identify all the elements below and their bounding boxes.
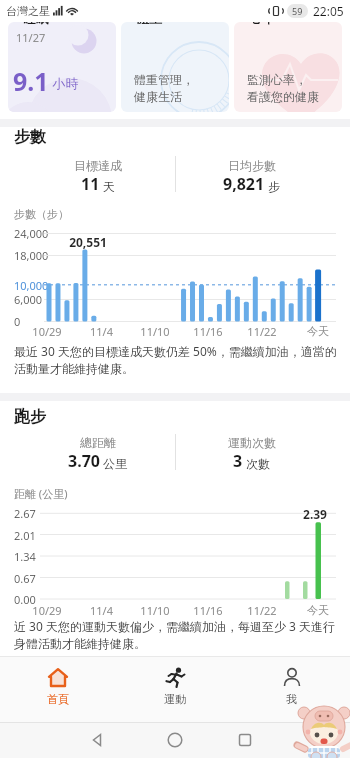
button[interactable]: 心率 (234, 22, 342, 112)
staticText: 我 (286, 692, 297, 706)
staticText: 步 (265, 178, 281, 194)
staticText: 日均步數 (228, 158, 276, 173)
staticText: 11/10 (140, 324, 170, 339)
staticText: 身體活動才能維持健康。 (14, 636, 146, 651)
staticText: 步數（步） (14, 207, 69, 221)
staticText: 首頁 (47, 692, 69, 706)
button[interactable]: 睡眠 (8, 22, 116, 112)
staticText: 運動次數 (228, 435, 276, 450)
staticText: 11 (81, 173, 100, 195)
staticText: 3.70 (68, 450, 100, 472)
staticText: 活動量才能維持健康。 (14, 361, 134, 376)
staticText: 0 (14, 314, 21, 329)
staticText: 總距離 (80, 435, 116, 450)
staticText: 今天 (307, 324, 329, 338)
button[interactable] (153, 722, 197, 758)
staticText: 監測心率， (247, 72, 307, 87)
button[interactable]: 體重 (121, 22, 229, 112)
staticText: 距離 (公里) (14, 486, 68, 501)
staticText: 9.1 (13, 64, 49, 98)
staticText: 11/10 (140, 603, 170, 618)
staticText: 今天 (307, 603, 329, 617)
staticText: 20,551 (69, 234, 107, 250)
staticText: 11/27 (16, 30, 46, 45)
staticText: 1.34 (14, 549, 36, 564)
staticText: 10/29 (32, 324, 62, 339)
button[interactable] (75, 722, 119, 758)
staticText: 體重 (136, 22, 162, 26)
staticText: 2.01 (14, 528, 36, 543)
staticText: 心率 (249, 22, 275, 26)
staticText: 0.67 (14, 571, 36, 586)
staticText: 11/4 (90, 324, 113, 339)
staticText: 6,000 (14, 292, 43, 307)
staticText: 0.00 (14, 592, 36, 607)
staticText: 運動 (164, 692, 186, 706)
staticText: 11/22 (247, 324, 277, 339)
staticText: 11/16 (193, 603, 223, 618)
button[interactable]: 首頁 (0, 656, 116, 722)
staticText: 台灣之星 (6, 4, 50, 18)
staticText: 健康生活 (134, 89, 182, 104)
staticText: 3 (233, 450, 243, 472)
staticText: 11/22 (247, 603, 277, 618)
staticText: 看護您的健康 (247, 89, 319, 104)
button[interactable] (223, 722, 267, 758)
staticText: 次數 (243, 455, 271, 471)
button[interactable]: 我 (233, 656, 350, 722)
staticText: 11/4 (90, 603, 113, 618)
staticText: 步數 (14, 127, 46, 147)
staticText: 跑步 (14, 407, 46, 427)
staticText: 24,000 (14, 226, 49, 241)
staticText: 睡眠 (23, 22, 49, 26)
staticText: 10,000 (14, 278, 49, 293)
button[interactable]: 運動 (116, 656, 233, 722)
staticText: 2.39 (303, 506, 327, 522)
staticText: 18,000 (14, 248, 49, 263)
staticText: 10/29 (32, 603, 62, 618)
staticText: 最近 30 天您的目標達成天數仍差 50%，需繼續加油，適當的 (14, 343, 337, 359)
staticText: 公里 (100, 455, 128, 471)
staticText: 2.67 (14, 506, 36, 521)
staticText: 59 (292, 5, 303, 17)
staticText: 目標達成 (74, 158, 122, 173)
staticText: 9,821 (223, 173, 265, 195)
staticText: 近 30 天您的運動天數偏少，需繼續加油，每週至少 3 天進行 (14, 618, 336, 634)
staticText: 11/16 (193, 324, 223, 339)
staticText: 小時 (49, 74, 79, 92)
staticText: 天 (100, 178, 116, 194)
staticText: 體重管理， (134, 72, 194, 87)
staticText: 22:05 (313, 3, 344, 19)
